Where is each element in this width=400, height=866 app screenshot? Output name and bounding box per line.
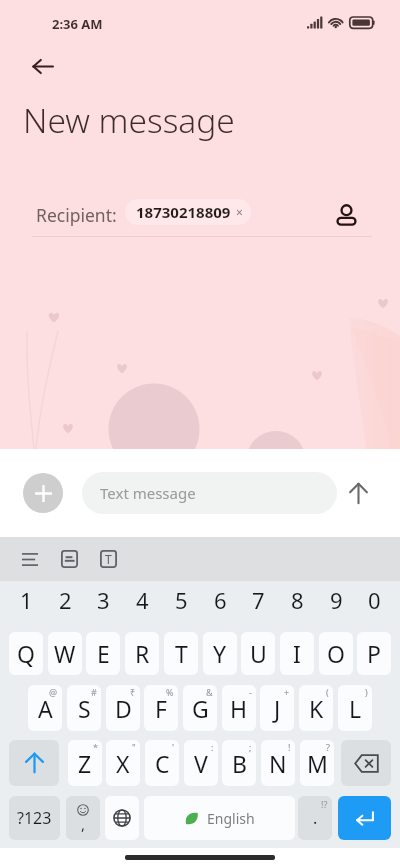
button[interactable]: 5 (164, 585, 198, 615)
button[interactable]: 9 (319, 585, 353, 615)
button[interactable]: U (241, 632, 275, 675)
staticText: 0 (368, 585, 381, 615)
staticText: !? (321, 798, 328, 810)
button[interactable]: S (67, 685, 101, 731)
staticText: ( (326, 686, 329, 698)
staticText: , (81, 814, 86, 834)
button[interactable]: English (144, 796, 295, 840)
button[interactable]: Switch language (105, 796, 139, 840)
staticText: S (78, 693, 91, 724)
staticText: P (367, 638, 381, 669)
button[interactable]: Choose contact (326, 195, 366, 235)
staticText: + (284, 686, 290, 698)
button[interactable]: 3 (86, 585, 120, 615)
staticText: T (105, 551, 112, 567)
staticText: E (97, 638, 110, 669)
button[interactable]: Clipboard (55, 545, 83, 573)
button[interactable]: L (338, 685, 372, 731)
staticText: ₹ (130, 686, 136, 698)
staticText: 7 (252, 585, 265, 615)
button[interactable]: 7 (241, 585, 275, 615)
button[interactable]: V (184, 740, 218, 786)
staticText: Q (17, 638, 35, 669)
staticText: English (207, 809, 255, 828)
staticText: ' (172, 741, 175, 753)
button[interactable]: A (28, 685, 62, 731)
staticText: ? (326, 741, 330, 753)
button[interactable]: Enter (338, 796, 391, 840)
button[interactable]: 6 (203, 585, 237, 615)
staticText: New message (23, 97, 235, 143)
button[interactable]: , (66, 796, 100, 840)
button[interactable]: 18730218809 (125, 199, 251, 225)
staticText: K (309, 693, 324, 724)
button[interactable]: . (298, 796, 332, 840)
button[interactable]: 1 (9, 585, 43, 615)
button[interactable]: ?123 (9, 796, 60, 840)
staticText: 9 (330, 585, 343, 615)
staticText: I (293, 638, 301, 669)
button[interactable]: T (164, 632, 198, 675)
button[interactable]: 2 (48, 585, 82, 615)
staticText: ) (365, 686, 368, 698)
staticText: - (249, 686, 252, 698)
staticText: % (166, 686, 174, 698)
staticText: G (192, 693, 209, 724)
staticText: & (206, 686, 213, 698)
button[interactable]: Text editing (94, 545, 122, 573)
button[interactable]: H (222, 685, 256, 731)
staticText: # (91, 686, 97, 698)
button[interactable]: B (222, 740, 256, 786)
staticText: J (274, 693, 281, 724)
button[interactable]: I (280, 632, 314, 675)
staticText: D (115, 693, 132, 724)
button[interactable]: Shift (9, 740, 59, 786)
staticText: M (307, 748, 328, 779)
button[interactable]: Send (338, 473, 378, 513)
staticText: H (230, 693, 248, 724)
button[interactable]: Z (68, 740, 102, 786)
button[interactable]: Q (9, 632, 43, 675)
button[interactable]: Back (27, 50, 59, 82)
staticText: @ (49, 686, 58, 698)
staticText: * (93, 741, 98, 753)
staticText: . (313, 807, 318, 829)
staticText: 5 (175, 585, 188, 615)
button[interactable]: 8 (280, 585, 314, 615)
button[interactable]: Text message (82, 472, 337, 514)
button[interactable]: C (145, 740, 179, 786)
button[interactable]: O (319, 632, 353, 675)
button[interactable]: W (48, 632, 82, 675)
staticText: 2 (59, 585, 72, 615)
staticText: W (54, 638, 76, 669)
button[interactable]: Y (203, 632, 237, 675)
button[interactable]: E (86, 632, 120, 675)
staticText: 8 (291, 585, 304, 615)
staticText: A (38, 693, 53, 724)
staticText: 18730218809 (136, 202, 231, 222)
button[interactable]: M (300, 740, 334, 786)
staticText: O (327, 638, 345, 669)
button[interactable]: N (261, 740, 295, 786)
button[interactable]: K (299, 685, 333, 731)
button[interactable]: 4 (125, 585, 159, 615)
button[interactable]: D (106, 685, 140, 731)
button[interactable]: 0 (357, 585, 391, 615)
button[interactable]: G (183, 685, 217, 731)
button[interactable]: F (144, 685, 178, 731)
staticText: ; (249, 741, 252, 753)
button[interactable]: R (125, 632, 159, 675)
staticText: U (250, 638, 267, 669)
button[interactable]: P (357, 632, 391, 675)
button[interactable]: Backspace (341, 740, 391, 786)
button[interactable]: X (106, 740, 140, 786)
staticText: L (349, 693, 362, 724)
button[interactable]: Add attachment (23, 473, 63, 513)
staticText: " (132, 741, 136, 753)
staticText: Y (213, 638, 227, 669)
button[interactable]: Keyboard menu (16, 545, 44, 573)
staticText: F (155, 693, 167, 724)
staticText: ! (288, 741, 291, 753)
button[interactable]: J (260, 685, 294, 731)
staticText: 2:36 AM (52, 15, 103, 33)
